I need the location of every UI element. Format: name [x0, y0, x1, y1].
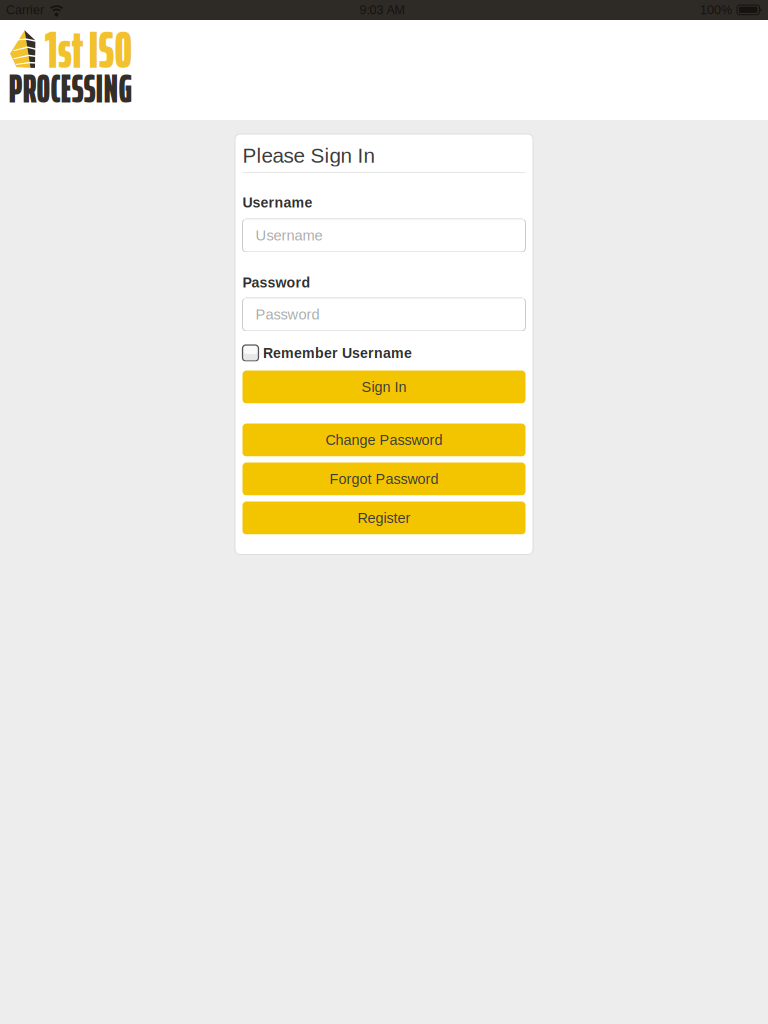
staticText: Change Password — [325, 432, 442, 448]
staticText: 100% — [700, 3, 732, 17]
staticText: PROCESSING — [8, 57, 132, 120]
staticText: 1st ISO — [44, 9, 132, 90]
button[interactable]: Sign In — [242, 370, 525, 403]
staticText: Username — [255, 227, 322, 244]
button[interactable]: Register — [242, 501, 525, 534]
staticText: Sign In — [361, 379, 406, 395]
staticText: Please Sign In — [242, 144, 374, 167]
button[interactable]: Remember Username — [242, 344, 525, 361]
button[interactable]: Password — [242, 298, 525, 331]
staticText: Password — [242, 275, 310, 290]
staticText: Carrier — [6, 3, 44, 17]
staticText: Register — [357, 510, 410, 526]
staticText: Forgot Password — [329, 471, 438, 487]
staticText: 9:03 AM — [359, 3, 404, 17]
staticText: Password — [255, 306, 319, 323]
staticText: Username — [242, 195, 312, 210]
button[interactable]: Forgot Password — [242, 462, 525, 495]
button[interactable]: Change Password — [242, 423, 525, 456]
staticText: Remember Username — [263, 345, 412, 361]
button[interactable]: Username — [242, 219, 525, 252]
